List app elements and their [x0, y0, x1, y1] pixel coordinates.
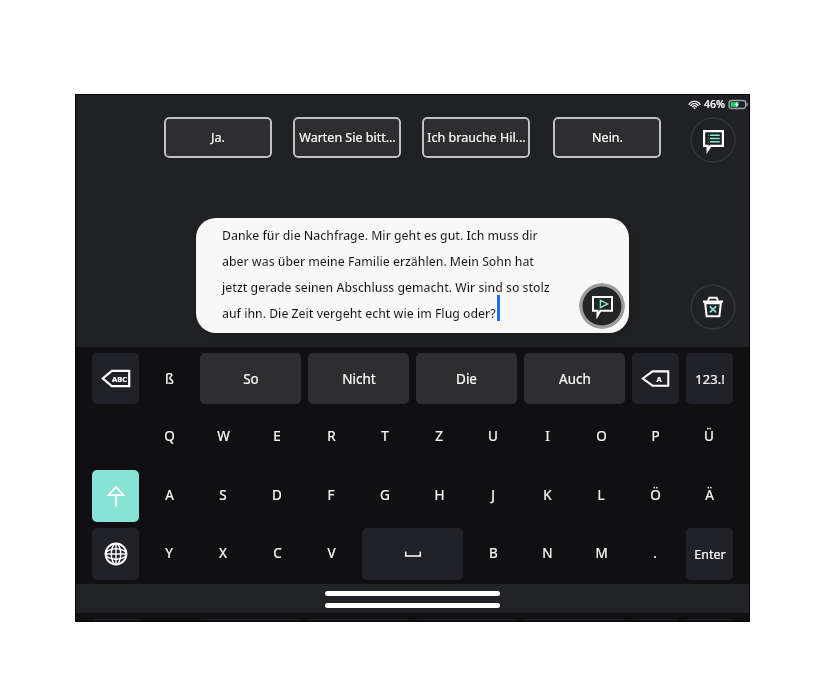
- staticText: N: [542, 544, 553, 562]
- staticText: Nein.: [592, 129, 623, 146]
- staticText: R: [327, 427, 336, 445]
- button[interactable]: Change language: [92, 528, 139, 580]
- staticText: Warten Sie bitt...: [299, 129, 396, 146]
- button[interactable]: Ä: [687, 473, 731, 517]
- staticText: Ö: [650, 486, 661, 504]
- button[interactable]: .: [633, 531, 677, 575]
- staticText: O: [596, 427, 607, 445]
- staticText: 46%: [704, 97, 725, 111]
- staticText: Ja.: [211, 129, 225, 146]
- staticText: X: [219, 544, 227, 562]
- staticText: I: [545, 427, 550, 445]
- button[interactable]: O: [579, 414, 623, 458]
- staticText: Nicht: [342, 370, 376, 388]
- button[interactable]: M: [579, 531, 623, 575]
- staticText: Enter: [694, 546, 726, 563]
- button[interactable]: F: [309, 473, 353, 517]
- button[interactable]: Die: [416, 353, 517, 404]
- button[interactable]: ß: [146, 353, 193, 404]
- staticText: ß: [165, 369, 174, 388]
- button[interactable]: Clear text: [690, 284, 736, 330]
- button[interactable]: K: [525, 473, 569, 517]
- button[interactable]: S: [201, 473, 245, 517]
- button[interactable]: E: [255, 414, 299, 458]
- button[interactable]: H: [417, 473, 461, 517]
- staticText: P: [651, 427, 660, 445]
- staticText: ABC: [112, 374, 127, 384]
- staticText: Danke für die Nachfrage. Mir geht es gut…: [222, 227, 562, 322]
- button[interactable]: Backspace: [632, 353, 679, 404]
- staticText: G: [380, 486, 390, 504]
- button[interactable]: P: [633, 414, 677, 458]
- staticText: J: [491, 486, 495, 504]
- button[interactable]: Z: [417, 414, 461, 458]
- staticText: Q: [164, 427, 175, 445]
- staticText: A: [165, 486, 174, 504]
- button[interactable]: Keyboard mode: [92, 353, 139, 404]
- staticText: Ä: [705, 486, 714, 504]
- staticText: C: [273, 544, 282, 562]
- button[interactable]: Enter: [686, 528, 733, 580]
- button[interactable]: Ich brauche Hil...: [422, 117, 530, 158]
- button[interactable]: Phrase list: [690, 117, 736, 163]
- button[interactable]: T: [363, 414, 407, 458]
- button[interactable]: Y: [147, 531, 191, 575]
- staticText: .: [653, 544, 657, 562]
- button[interactable]: Q: [147, 414, 191, 458]
- staticText: M: [595, 544, 608, 562]
- button[interactable]: V: [309, 531, 353, 575]
- button[interactable]: Space: [362, 528, 463, 580]
- staticText: Ich brauche Hil...: [427, 129, 526, 146]
- button[interactable]: W: [201, 414, 245, 458]
- button[interactable]: R: [309, 414, 353, 458]
- staticText: Y: [165, 544, 173, 562]
- staticText: E: [273, 427, 281, 445]
- button[interactable]: B: [471, 531, 515, 575]
- staticText: Die: [456, 370, 477, 388]
- button[interactable]: G: [363, 473, 407, 517]
- staticText: B: [489, 544, 498, 562]
- staticText: A: [656, 374, 662, 384]
- button[interactable]: Ja.: [164, 117, 272, 158]
- button[interactable]: X: [201, 531, 245, 575]
- staticText: Ü: [704, 427, 714, 445]
- staticText: U: [488, 427, 498, 445]
- button[interactable]: Shift: [92, 470, 139, 522]
- staticText: K: [543, 486, 552, 504]
- button[interactable]: L: [579, 473, 623, 517]
- staticText: D: [272, 486, 282, 504]
- staticText: W: [217, 427, 230, 445]
- button[interactable]: D: [255, 473, 299, 517]
- button[interactable]: N: [525, 531, 569, 575]
- button[interactable]: Nein.: [553, 117, 661, 158]
- button[interactable]: J: [471, 473, 515, 517]
- button[interactable]: Ö: [633, 473, 677, 517]
- button[interactable]: Danke für die Nachfrage. Mir geht es gut…: [196, 218, 629, 333]
- button[interactable]: So: [200, 353, 301, 404]
- button[interactable]: Speak: [579, 283, 625, 329]
- staticText: T: [381, 427, 389, 445]
- staticText: F: [327, 486, 335, 504]
- button[interactable]: 123.!: [686, 353, 733, 404]
- staticText: H: [434, 486, 445, 504]
- staticText: V: [327, 544, 336, 562]
- staticText: Z: [435, 427, 443, 445]
- button[interactable]: C: [255, 531, 299, 575]
- button[interactable]: U: [471, 414, 515, 458]
- staticText: L: [597, 486, 605, 504]
- staticText: So: [243, 370, 259, 388]
- button[interactable]: Nicht: [308, 353, 409, 404]
- button[interactable]: I: [525, 414, 569, 458]
- staticText: S: [219, 486, 227, 504]
- staticText: Auch: [559, 370, 591, 388]
- button[interactable]: A: [147, 473, 191, 517]
- button[interactable]: Auch: [524, 353, 625, 404]
- staticText: 123.!: [695, 370, 725, 388]
- button[interactable]: Warten Sie bitt...: [293, 117, 401, 158]
- button[interactable]: Ü: [687, 414, 731, 458]
